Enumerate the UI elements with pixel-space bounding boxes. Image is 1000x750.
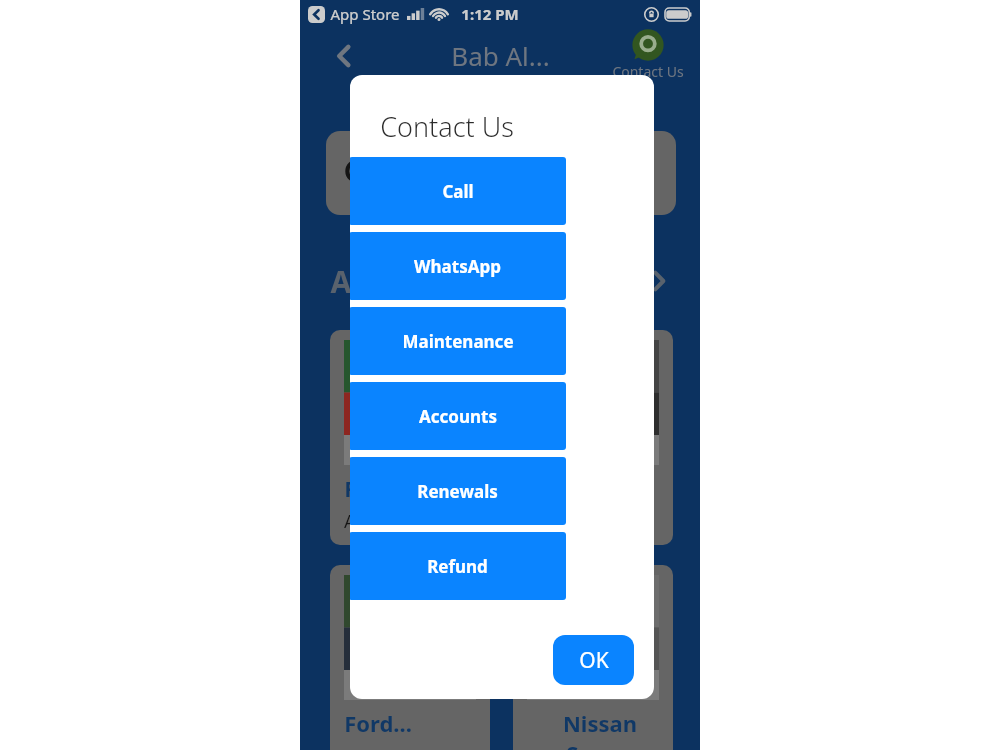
staticText: Maintenance [402, 330, 514, 353]
staticText: App Store [330, 4, 400, 24]
staticText: Refund [427, 555, 488, 578]
staticText: Ford... [344, 708, 412, 738]
button[interactable] [326, 131, 676, 215]
button[interactable]: Renewals [350, 457, 566, 525]
button[interactable]: y [513, 330, 673, 545]
staticText: A... [344, 509, 370, 534]
button[interactable]: Nissan Sunny [513, 565, 673, 750]
button[interactable]: Call [350, 157, 566, 225]
button[interactable]: F... [330, 330, 490, 545]
button[interactable]: Accounts [350, 382, 566, 450]
staticText: 1:12 PM [461, 4, 519, 24]
button[interactable]: Refund [350, 532, 566, 600]
button[interactable]: Ford... [330, 565, 490, 750]
button[interactable]: Back [326, 38, 362, 74]
staticText: Contact Us [612, 62, 684, 81]
staticText: Accounts [419, 405, 497, 428]
button[interactable]: Maintenance [350, 307, 566, 375]
button[interactable]: WhatsApp [350, 232, 566, 300]
staticText: WhatsApp [414, 255, 501, 278]
button[interactable]: A... [330, 258, 670, 304]
staticText: Nissan Sunny [527, 708, 673, 750]
staticText: Contact Us [380, 108, 514, 145]
staticText: Renewals [417, 480, 498, 503]
button[interactable]: OK [553, 635, 634, 685]
staticText: OK [579, 646, 609, 675]
staticText: Bab Al... [451, 38, 550, 73]
button[interactable]: Contact Us [612, 28, 684, 81]
staticText: Call [442, 180, 474, 203]
staticText: F... [344, 473, 374, 503]
staticText: A... [330, 261, 377, 302]
